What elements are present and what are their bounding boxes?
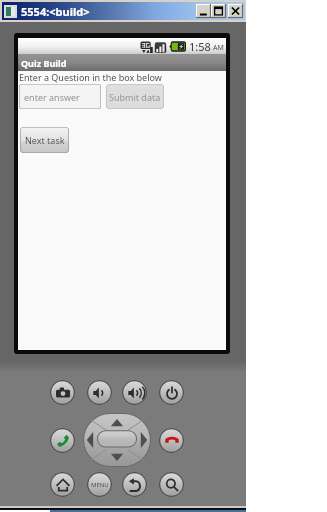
button[interactable]: Search [159,472,184,497]
button[interactable]: Close [228,4,243,18]
button[interactable]: Next task [20,127,69,153]
staticText: Enter a Question in the box below [19,71,162,83]
button[interactable]: Call [50,428,75,453]
button[interactable]: Back [122,472,147,497]
button[interactable]: End call [159,428,184,453]
button[interactable]: Camera [50,380,75,405]
staticText: enter answer [24,91,80,103]
button[interactable]: enter answer [19,84,101,109]
button[interactable]: Volume up [122,380,147,405]
button[interactable]: Power [159,380,184,405]
button[interactable]: Minimize [196,4,211,18]
staticText: Next task [25,134,65,146]
staticText: AM [213,43,224,53]
staticText: Quiz Build [21,57,67,69]
button[interactable]: Submit data [106,84,164,109]
button[interactable]: Volume down [87,380,112,405]
button[interactable]: Maximize [211,4,226,18]
staticText: Submit data [109,91,161,103]
staticText: MENU [91,481,109,489]
button[interactable]: Home [50,472,75,497]
button[interactable]: MENU [87,472,112,497]
button[interactable]: Directional pad [83,413,151,467]
staticText: 1:58 [189,39,211,54]
staticText: 5554:<build> [21,4,90,19]
